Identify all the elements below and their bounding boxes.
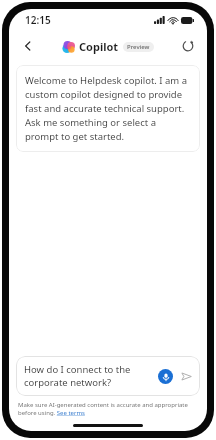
button[interactable]: Voice input: [158, 369, 173, 384]
staticText: 12:15: [25, 13, 51, 27]
button[interactable]: Restart conversation: [175, 33, 201, 59]
button[interactable]: Send: [179, 369, 194, 384]
staticText: Welcome to Helpdesk copilot. I am a cust…: [25, 74, 191, 143]
staticText: How do I connect to the corporate networ…: [24, 363, 154, 389]
button[interactable]: Welcome to Helpdesk copilot. I am a cust…: [16, 65, 200, 152]
staticText: Copilot: [79, 39, 119, 54]
staticText: Make sure AI-generated content is accura…: [18, 401, 198, 417]
button[interactable]: How do I connect to the corporate networ…: [16, 356, 200, 396]
staticText: Preview: [127, 43, 150, 51]
button[interactable]: Back: [15, 33, 41, 59]
